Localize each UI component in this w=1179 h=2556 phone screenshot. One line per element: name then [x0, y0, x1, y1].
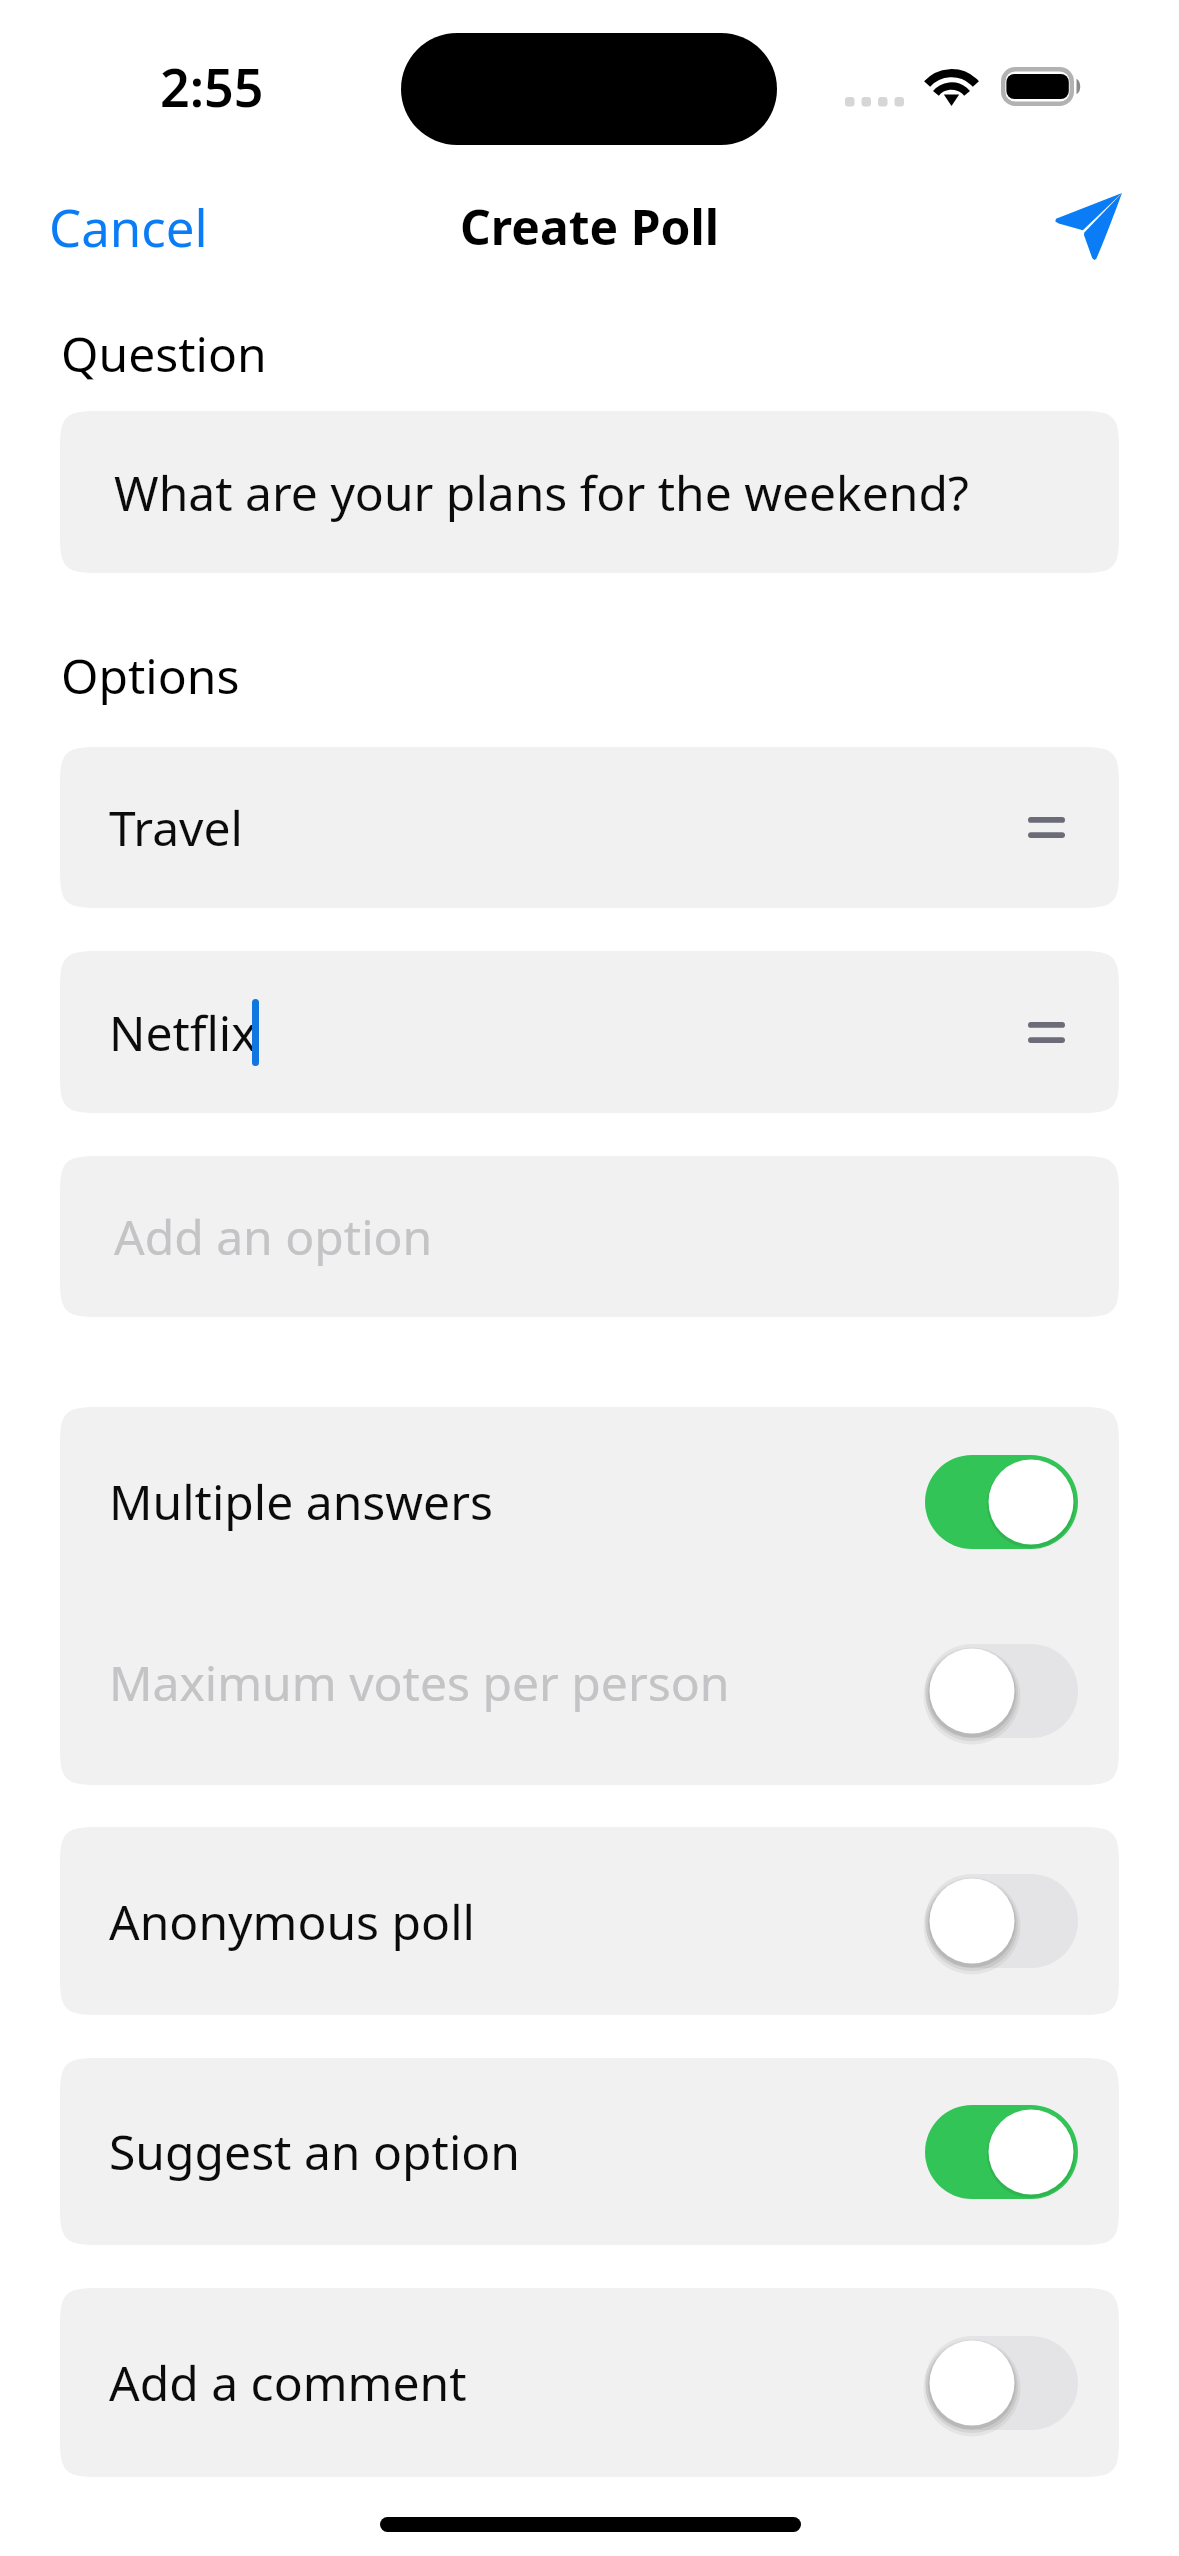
button[interactable]: Add a comment: [60, 2288, 1119, 2477]
staticText: 2:55: [160, 51, 264, 122]
button[interactable]: Disabled: [925, 1644, 1078, 1738]
button[interactable]: Enabled: [925, 1455, 1078, 1549]
button[interactable]: Cancel: [40, 186, 217, 267]
staticText: Anonymous poll: [109, 1889, 475, 1954]
button[interactable]: [60, 1827, 1119, 2015]
staticText: Suggest an option: [109, 2119, 520, 2184]
staticText: Travel: [109, 795, 243, 860]
staticText: Add an option: [114, 1204, 433, 1269]
staticText: Question: [61, 321, 267, 386]
staticText: What are your plans for the weekend?: [114, 460, 969, 525]
staticText: Create Poll: [460, 194, 720, 259]
staticText: Options: [61, 643, 240, 708]
staticText: Maximum votes per person: [109, 1650, 730, 1715]
button[interactable]: Travel: [60, 747, 1119, 908]
button[interactable]: [60, 2058, 1119, 2245]
button[interactable]: Send: [1035, 173, 1142, 280]
button[interactable]: Disabled: [925, 1874, 1078, 1968]
button[interactable]: Maximum votes per person: [60, 1596, 1119, 1785]
button[interactable]: [60, 2288, 1119, 2477]
button[interactable]: Netflix: [60, 951, 1119, 1113]
button[interactable]: Anonymous poll: [60, 1827, 1119, 2015]
staticText: Netflix: [109, 1000, 257, 1065]
button[interactable]: What are your plans for the weekend?: [60, 411, 1119, 573]
button[interactable]: Disabled: [925, 2336, 1078, 2430]
button[interactable]: Multiple answers: [60, 1407, 1119, 1596]
button[interactable]: Add an option: [60, 1156, 1119, 1317]
staticText: Multiple answers: [109, 1469, 493, 1534]
button[interactable]: Suggest an option: [60, 2058, 1119, 2245]
staticText: Add a comment: [109, 2350, 467, 2415]
button[interactable]: Enabled: [925, 2105, 1078, 2199]
staticText: Cancel: [49, 192, 208, 261]
button[interactable]: [60, 1407, 1119, 1785]
